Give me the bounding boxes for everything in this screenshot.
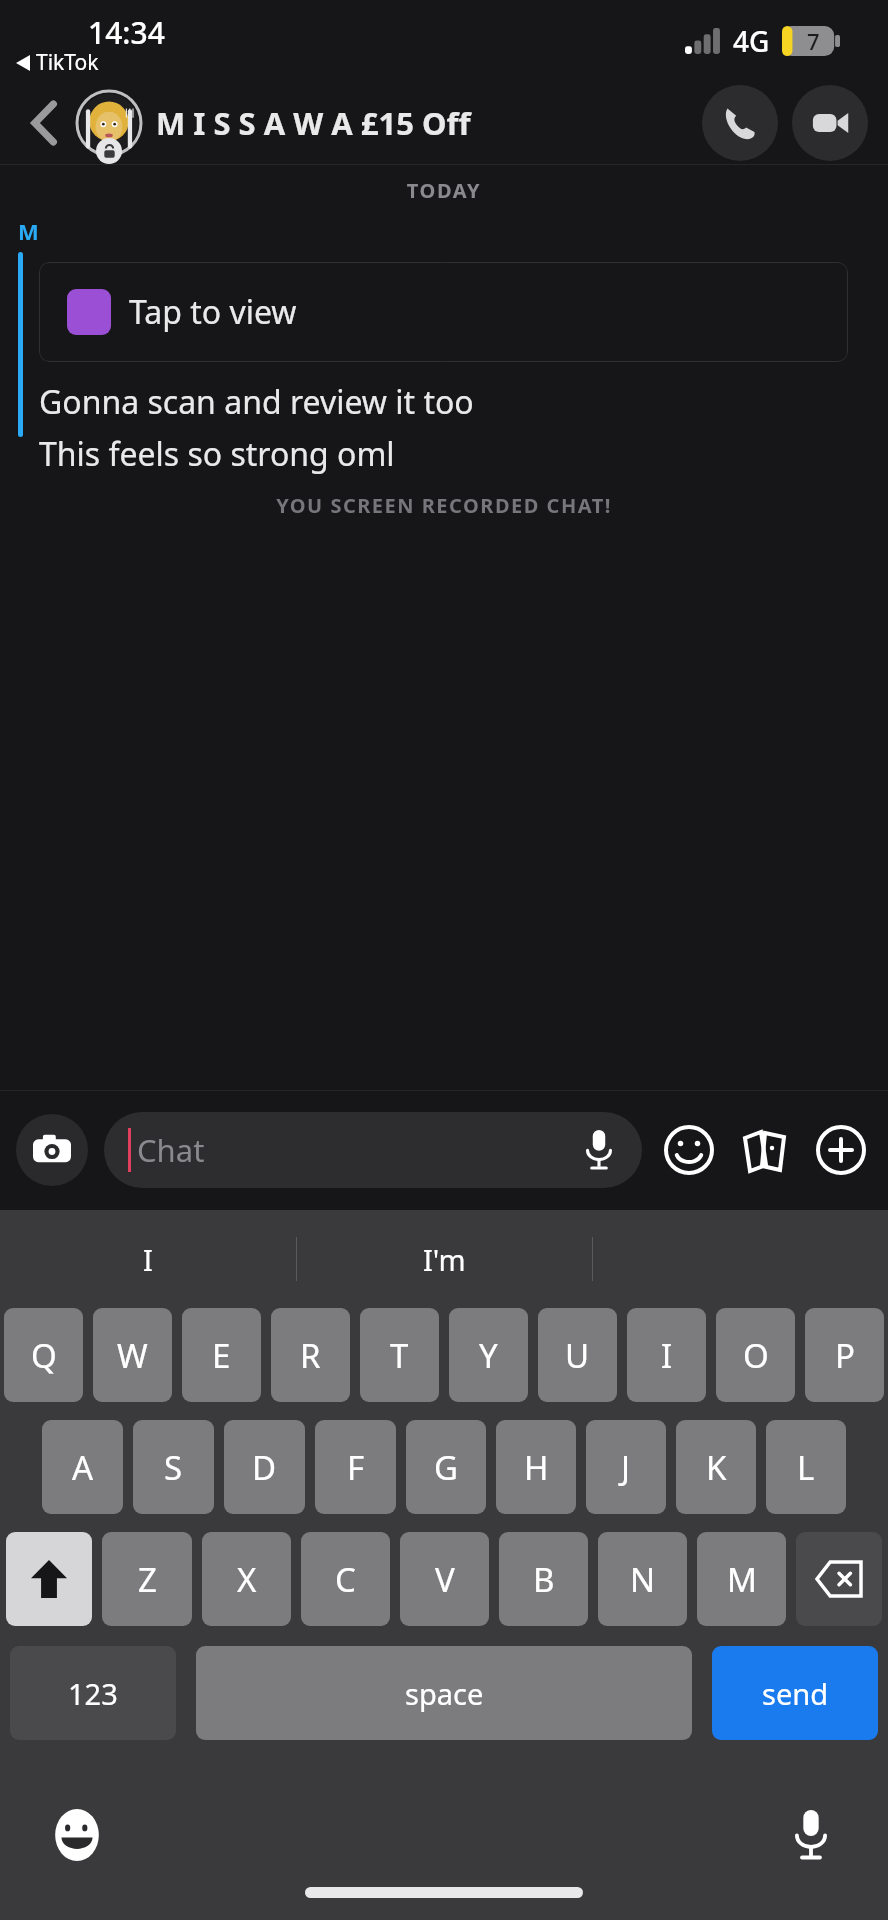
button[interactable]: Back <box>22 100 68 146</box>
button[interactable]: Tap to view <box>39 262 848 362</box>
button[interactable]: P <box>805 1308 884 1402</box>
button[interactable]: Emoji keyboard <box>48 1806 106 1864</box>
button[interactable]: Call <box>702 85 778 161</box>
button[interactable]: Q <box>4 1308 83 1402</box>
staticText: I <box>143 1240 153 1279</box>
button[interactable]: T <box>360 1308 439 1402</box>
button[interactable]: Stickers <box>658 1119 720 1181</box>
staticText: N <box>630 1557 656 1602</box>
staticText: S <box>164 1445 183 1490</box>
button[interactable]: Video call <box>792 85 868 161</box>
button[interactable]: I'm <box>297 1210 592 1308</box>
staticText: G <box>434 1445 459 1490</box>
staticText: M I S S A W A £15 Off <box>156 102 471 144</box>
staticText: YOU SCREEN RECORDED CHAT! <box>0 492 888 519</box>
button[interactable]: send <box>712 1646 878 1740</box>
button[interactable]: J <box>586 1420 666 1514</box>
staticText: F <box>347 1445 365 1490</box>
button[interactable]: 123 <box>10 1646 176 1740</box>
staticText: 7 <box>807 26 820 56</box>
button[interactable]: I <box>0 1210 296 1308</box>
staticText: P <box>835 1333 855 1378</box>
button[interactable]: H <box>496 1420 576 1514</box>
staticText: X <box>237 1557 257 1602</box>
button[interactable]: Chat <box>104 1112 642 1188</box>
button[interactable]: A <box>42 1420 123 1514</box>
staticText: Z <box>138 1557 157 1602</box>
staticText: K <box>706 1445 727 1490</box>
button[interactable]: W <box>93 1308 172 1402</box>
staticText: This feels so strong oml <box>39 432 395 476</box>
staticText: TikTok <box>36 48 99 77</box>
staticText: Y <box>479 1333 498 1378</box>
staticText: Chat <box>137 1129 205 1171</box>
staticText: D <box>252 1445 277 1490</box>
staticText: B <box>533 1557 555 1602</box>
staticText: 123 <box>68 1674 118 1713</box>
staticText: space <box>405 1674 484 1713</box>
staticText: U <box>565 1333 590 1378</box>
staticText: C <box>335 1557 356 1602</box>
staticText: 4G <box>733 22 770 60</box>
staticText: M <box>727 1557 757 1602</box>
button[interactable]: Voice input <box>782 1806 840 1864</box>
staticText: J <box>621 1445 631 1490</box>
button[interactable]: D <box>224 1420 305 1514</box>
button[interactable]: S <box>133 1420 214 1514</box>
button[interactable]: V <box>400 1532 489 1626</box>
button[interactable]: I <box>627 1308 706 1402</box>
staticText: V <box>435 1557 455 1602</box>
staticText: W <box>117 1333 148 1378</box>
button[interactable]: X <box>202 1532 291 1626</box>
button[interactable]: Camera <box>16 1114 88 1186</box>
staticText: send <box>762 1674 829 1713</box>
button[interactable]: Backspace <box>796 1532 882 1626</box>
staticText: H <box>524 1445 549 1490</box>
button[interactable]: R <box>271 1308 350 1402</box>
button[interactable]: Shift <box>6 1532 92 1626</box>
button[interactable]: L <box>766 1420 846 1514</box>
button[interactable]: Memories <box>734 1119 796 1181</box>
staticText: I'm <box>423 1240 466 1279</box>
button[interactable]: U <box>538 1308 617 1402</box>
button[interactable]: E <box>182 1308 261 1402</box>
staticText: T <box>390 1333 409 1378</box>
button[interactable]: Profile <box>76 90 142 156</box>
staticText: O <box>743 1333 769 1378</box>
staticText: L <box>797 1445 815 1490</box>
button[interactable]: Y <box>449 1308 528 1402</box>
staticText: TODAY <box>0 177 888 204</box>
button[interactable]: Z <box>102 1532 192 1626</box>
button[interactable]: F <box>315 1420 396 1514</box>
staticText: E <box>212 1333 231 1378</box>
button[interactable]: K <box>676 1420 756 1514</box>
button[interactable]: C <box>301 1532 390 1626</box>
button[interactable]: M <box>697 1532 786 1626</box>
button[interactable]: Voice message <box>570 1121 628 1179</box>
staticText: A <box>72 1445 94 1490</box>
staticText: Tap to view <box>129 290 297 334</box>
button[interactable]: More options <box>810 1119 872 1181</box>
staticText: R <box>300 1333 321 1378</box>
staticText: Q <box>31 1333 57 1378</box>
button[interactable]: N <box>598 1532 687 1626</box>
button[interactable]: G <box>406 1420 486 1514</box>
button[interactable]: space <box>196 1646 692 1740</box>
staticText: 14:34 <box>88 12 165 53</box>
staticText: M <box>18 216 39 246</box>
button[interactable]: B <box>499 1532 588 1626</box>
staticText: Gonna scan and review it too <box>39 380 474 424</box>
button[interactable]: O <box>716 1308 795 1402</box>
staticText: I <box>661 1333 673 1378</box>
